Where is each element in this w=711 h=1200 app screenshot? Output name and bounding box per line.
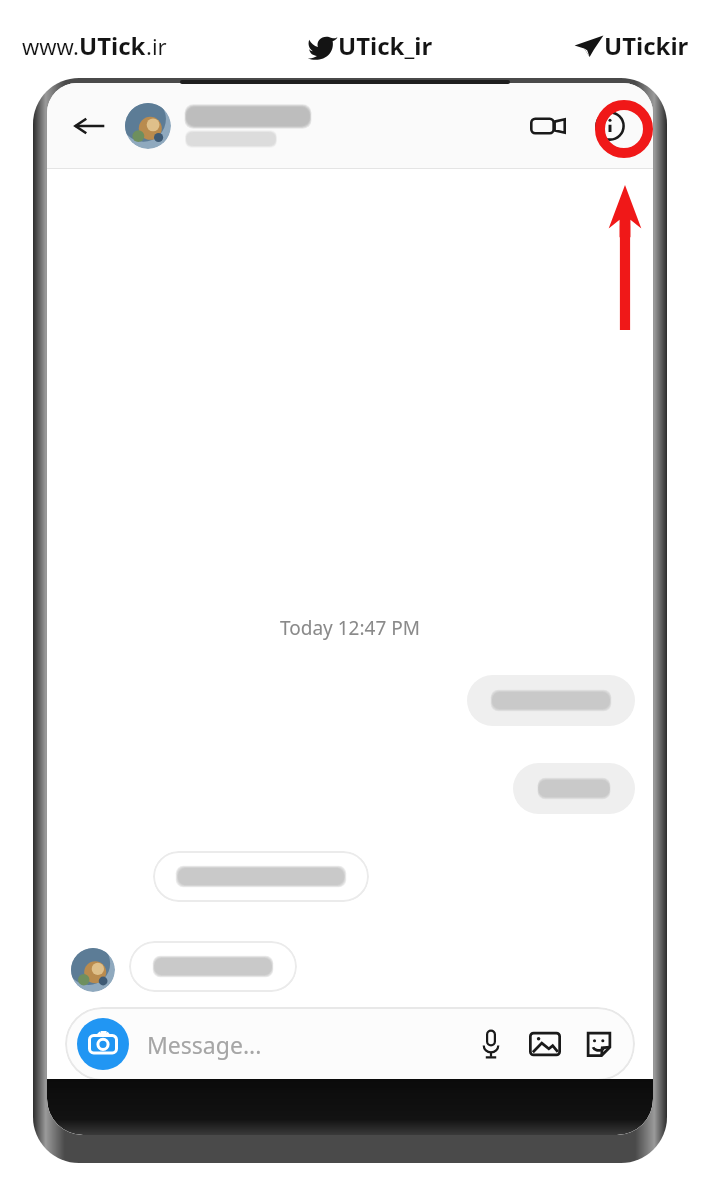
staticText: Message... [147, 1029, 262, 1060]
button[interactable]: Back [63, 100, 115, 152]
button[interactable] [125, 103, 521, 149]
button[interactable]: Voice message [467, 1020, 515, 1068]
staticText: Today 12:47 PM [280, 615, 420, 641]
button[interactable]: Info [583, 99, 637, 153]
button[interactable]: Camera [65, 1007, 635, 1081]
button[interactable]: Stickers [575, 1020, 623, 1068]
button[interactable] [153, 851, 369, 902]
button[interactable] [129, 941, 297, 992]
staticText: UTick_ir [338, 29, 433, 62]
button[interactable] [513, 763, 635, 814]
staticText: .ir [146, 31, 167, 61]
button[interactable] [467, 675, 635, 726]
staticText: UTick [79, 29, 146, 62]
staticText: www. [22, 31, 79, 61]
button[interactable]: Camera [77, 1018, 129, 1070]
button[interactable]: Video call [521, 99, 575, 153]
button[interactable]: Gallery [521, 1020, 569, 1068]
staticText: UTickir [604, 29, 689, 62]
